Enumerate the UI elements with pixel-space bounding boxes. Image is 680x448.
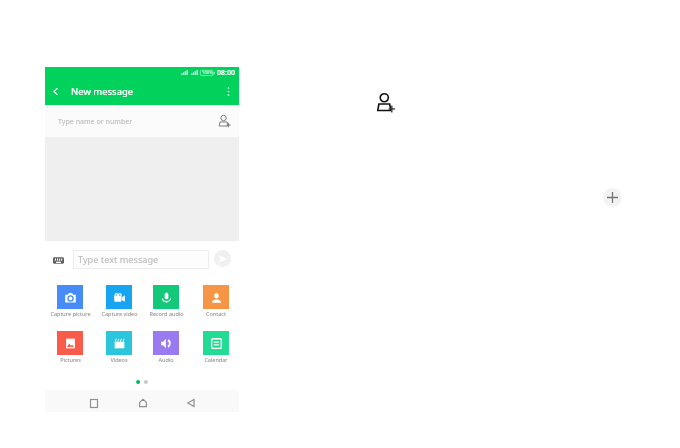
button[interactable]: Videos — [97, 331, 141, 363]
button[interactable]: Home — [133, 393, 153, 413]
button[interactable]: Back — [45, 78, 65, 105]
button[interactable]: Type text message — [78, 250, 209, 269]
button[interactable]: Keyboard — [51, 253, 65, 267]
button[interactable]: Recents — [84, 393, 104, 413]
button[interactable]: Add recipient — [218, 115, 230, 127]
staticText: 08:00 — [217, 68, 235, 78]
button[interactable]: Contact — [194, 285, 238, 317]
button[interactable]: Calendar — [194, 331, 238, 363]
staticText: Audio — [158, 356, 174, 363]
staticText: Capture picture — [50, 310, 91, 317]
staticText: Contact — [206, 310, 226, 317]
button[interactable]: Record audio — [144, 285, 188, 317]
button[interactable]: Audio — [144, 331, 188, 363]
staticText: 100% — [202, 70, 213, 76]
button[interactable]: Add recipient — [376, 93, 394, 112]
button[interactable]: Add — [603, 188, 622, 207]
button[interactable]: Type name or number — [58, 105, 230, 137]
button[interactable]: Back — [181, 393, 201, 413]
button[interactable]: Pictures — [48, 331, 92, 363]
staticText: Calendar — [204, 356, 228, 363]
button[interactable]: Send — [214, 250, 231, 267]
button[interactable]: Capture picture — [48, 285, 92, 317]
button[interactable]: More options — [217, 78, 239, 105]
staticText: Record audio — [149, 310, 184, 317]
staticText: Type text message — [78, 253, 159, 266]
staticText: Pictures — [60, 356, 81, 363]
staticText: New message — [71, 85, 134, 98]
button[interactable]: Capture video — [97, 285, 141, 317]
staticText: Videos — [110, 356, 128, 363]
staticText: Capture video — [101, 310, 138, 317]
staticText: Type name or number — [58, 116, 133, 126]
